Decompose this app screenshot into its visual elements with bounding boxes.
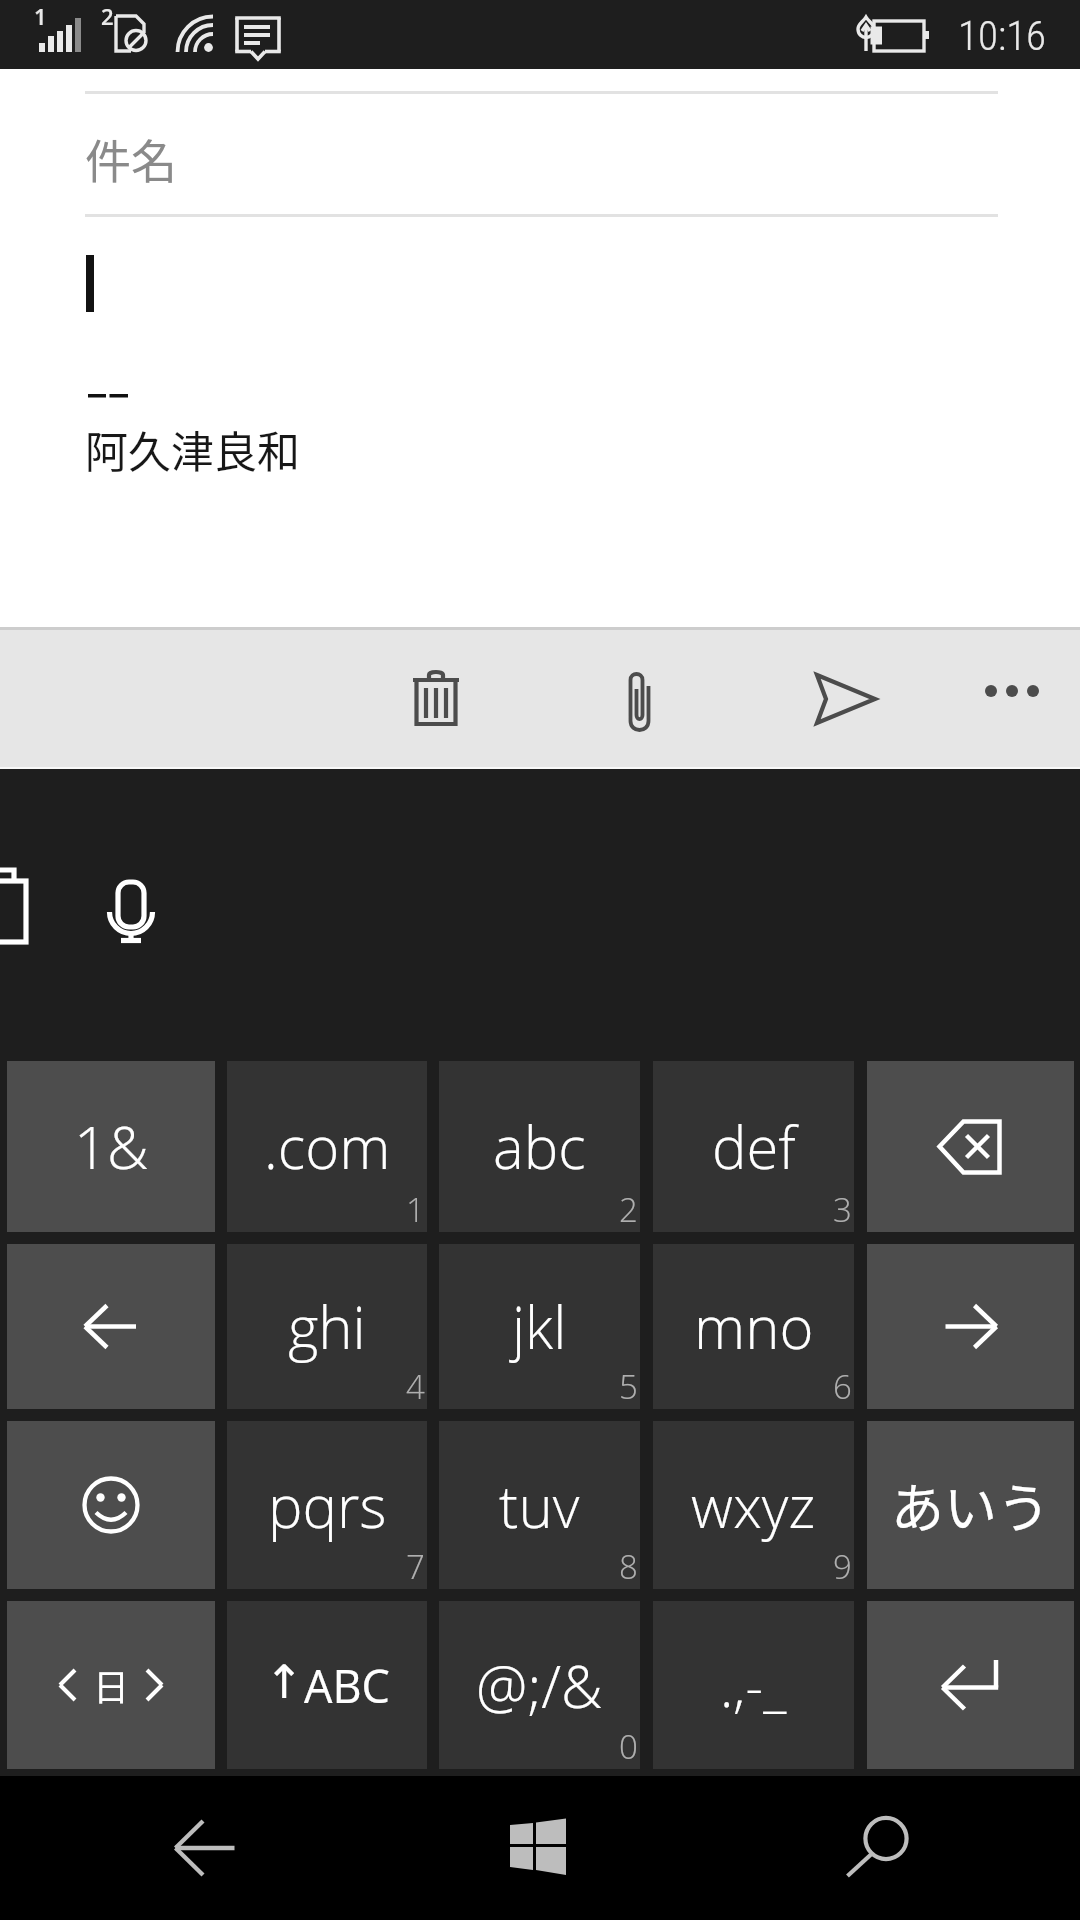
staticText: jkl (512, 1287, 567, 1366)
staticText: 6 (833, 1364, 852, 1409)
staticText: 0 (619, 1724, 638, 1769)
staticText: .com (264, 1107, 391, 1186)
staticText: .,-_ (720, 1647, 787, 1723)
button[interactable]: .com (227, 1061, 427, 1232)
button[interactable]: Voice input (90, 848, 170, 928)
staticText: 日 (93, 1659, 130, 1711)
button[interactable]: あいう (867, 1421, 1074, 1589)
button[interactable]: Emoji (7, 1421, 215, 1589)
staticText: 件名 (85, 125, 177, 192)
staticText: 7 (406, 1544, 425, 1589)
button[interactable]: ghi (227, 1244, 427, 1409)
staticText: 9 (833, 1544, 852, 1589)
button[interactable]: ↑ (227, 1601, 427, 1769)
staticText: あいう (891, 1467, 1050, 1544)
staticText: abc (493, 1107, 586, 1186)
button[interactable]: Backspace (867, 1061, 1074, 1232)
button[interactable]: Move cursor right (867, 1244, 1074, 1409)
staticText: 8 (619, 1544, 638, 1589)
button[interactable]: 1& (7, 1061, 215, 1232)
staticText: 1 (406, 1187, 425, 1232)
button[interactable]: wxyz (653, 1421, 854, 1589)
staticText: 5 (619, 1364, 638, 1409)
button[interactable]: Start (478, 1788, 598, 1908)
button[interactable]: Send (786, 639, 906, 759)
staticText: 2 (619, 1187, 638, 1232)
button[interactable]: Delete (376, 639, 496, 759)
button[interactable]: pqrs (227, 1421, 427, 1589)
staticText: @;/& (476, 1646, 603, 1725)
button[interactable]: Search (826, 1788, 946, 1908)
staticText: 3 (833, 1187, 852, 1232)
staticText: ghi (288, 1287, 366, 1366)
staticText: 10:16 (958, 12, 1047, 60)
staticText: 2 (101, 1, 114, 31)
staticText: ABC (304, 1655, 390, 1716)
button[interactable]: Clipboard (0, 848, 54, 928)
button[interactable]: def (653, 1061, 854, 1232)
staticText: mno (694, 1287, 814, 1366)
staticText: ↑ (265, 1655, 304, 1709)
staticText: tuv (499, 1466, 580, 1545)
button[interactable]: Move cursor left (7, 1244, 215, 1409)
button[interactable]: jkl (439, 1244, 640, 1409)
button[interactable]: Enter (867, 1601, 1074, 1769)
button[interactable]: mno (653, 1244, 854, 1409)
button[interactable]: Switch input language (7, 1601, 215, 1769)
staticText: 1& (74, 1107, 149, 1186)
staticText: pqrs (268, 1466, 387, 1545)
staticText: 阿久津良和 (85, 418, 300, 480)
button[interactable]: @;/& (439, 1601, 640, 1769)
staticText: def (712, 1107, 796, 1186)
button[interactable]: More options (952, 639, 1072, 759)
staticText: wxyz (691, 1466, 816, 1545)
button[interactable]: Back (145, 1788, 265, 1908)
staticText: 4 (406, 1364, 425, 1409)
button[interactable]: tuv (439, 1421, 640, 1589)
button[interactable]: abc (439, 1061, 640, 1232)
staticText: 1 (34, 1, 47, 31)
button[interactable]: Attach (580, 639, 700, 759)
button[interactable]: .,-_ (653, 1601, 854, 1769)
